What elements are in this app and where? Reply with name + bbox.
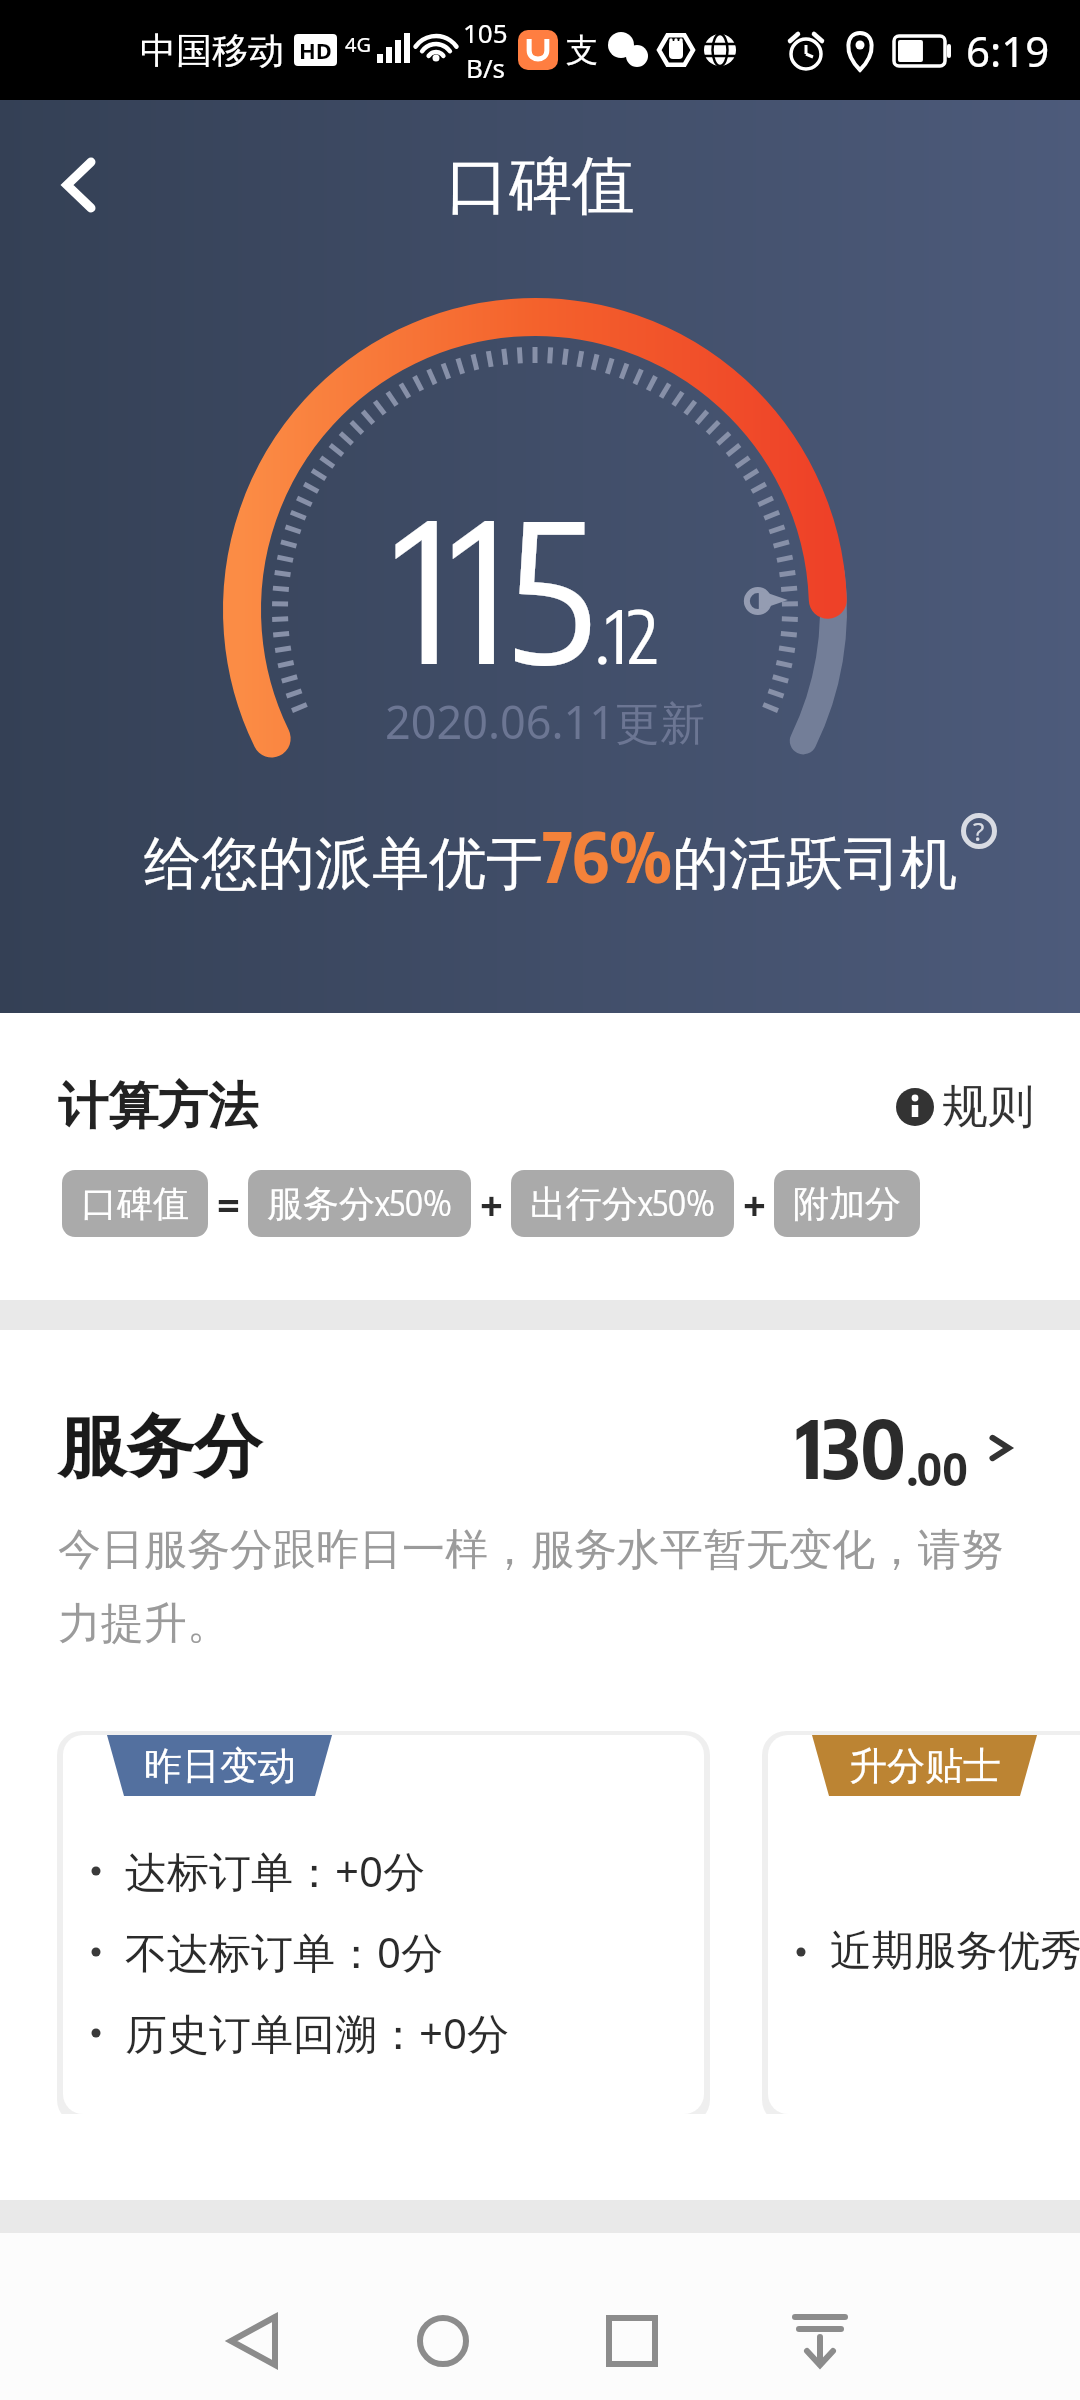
staticText: 支 (566, 30, 598, 70)
button[interactable]: 昨日变动 (63, 1735, 704, 2114)
staticText: 计算方法 (58, 1075, 258, 1138)
staticText: 附加分 (793, 1181, 901, 1226)
staticText: 达标订单：+0分 (125, 1842, 426, 1899)
staticText: .12 (595, 590, 659, 680)
staticText: ? (973, 813, 985, 847)
button[interactable]: Back (32, 137, 128, 233)
staticText: 近期服务优秀 (830, 1925, 1080, 1978)
staticText: 服务分x50% (267, 1181, 452, 1227)
staticText: + (743, 1177, 766, 1231)
staticText: 规则 (942, 1078, 1034, 1136)
staticText: 服务分 (58, 1405, 262, 1491)
button[interactable]: 服务分x50% (248, 1170, 471, 1237)
staticText: 6:19 (966, 22, 1050, 79)
button[interactable]: 附加分 (774, 1170, 920, 1237)
staticText: B/s (466, 50, 506, 85)
button[interactable]: 出行分x50% (511, 1170, 734, 1237)
staticText: 不达标订单：0分 (125, 1923, 444, 1980)
staticText: 105 (463, 15, 508, 50)
staticText: 今日服务分跟昨日一样，服务水平暂无变化，请努力提升。 (58, 1523, 1024, 1650)
button[interactable]: Hide navigation bar (765, 2286, 875, 2396)
staticText: 历史订单回溯：+0分 (125, 2004, 510, 2061)
button[interactable]: Home (388, 2286, 498, 2396)
staticText: = (217, 1177, 240, 1231)
staticText: 给您的派单优于76%的活跃司机 (144, 813, 958, 900)
button[interactable]: Help (961, 813, 997, 849)
staticText: 升分贴士 (849, 1742, 1001, 1790)
staticText: 4G (345, 31, 371, 58)
button[interactable]: 服务分 (0, 1330, 1080, 1497)
staticText: 口碑值 (446, 146, 635, 225)
staticText: 130 (796, 1398, 907, 1497)
button[interactable]: 口碑值 (62, 1170, 208, 1237)
staticText: 口碑值 (81, 1181, 189, 1226)
staticText: 2020.06.11更新 (385, 691, 706, 752)
button[interactable]: 升分贴士 (768, 1735, 1080, 2114)
staticText: 昨日变动 (144, 1742, 296, 1790)
button[interactable]: 规则 (896, 1078, 1034, 1136)
staticText: HD (299, 35, 332, 65)
button[interactable]: Recent apps (577, 2286, 687, 2396)
staticText: 出行分x50% (530, 1181, 715, 1227)
button[interactable]: Back (200, 2286, 310, 2396)
staticText: 中国移动 (140, 28, 284, 73)
staticText: + (480, 1177, 503, 1231)
staticText: 115 (394, 466, 595, 706)
staticText: .00 (907, 1441, 968, 1496)
